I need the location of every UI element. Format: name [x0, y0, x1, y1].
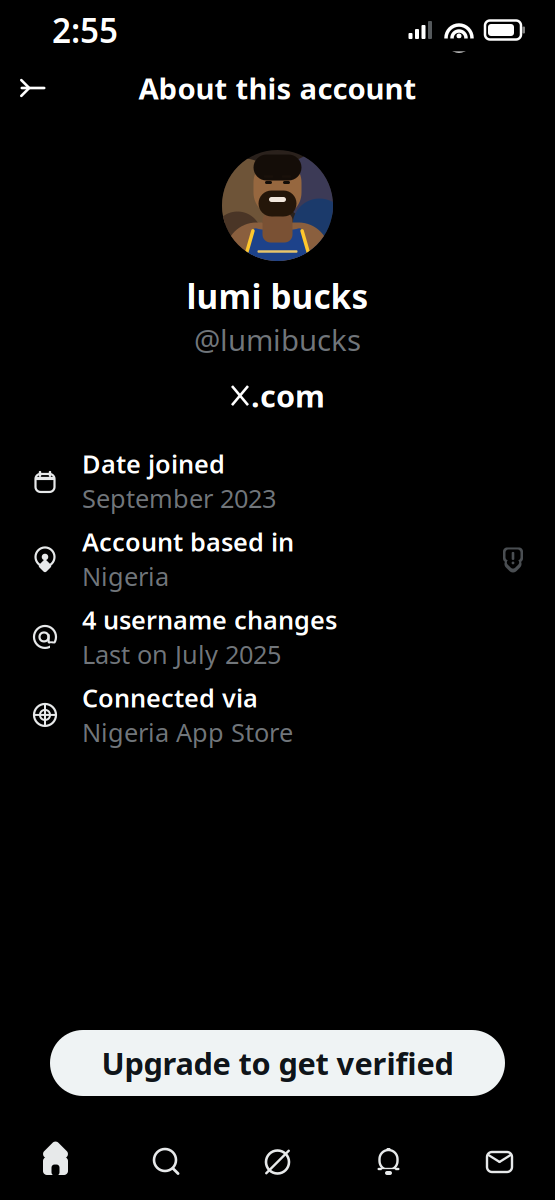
staticText: Date joined	[82, 447, 225, 480]
button[interactable]: About account location	[491, 537, 535, 581]
staticText: About this account	[138, 68, 416, 107]
staticText: Connected via	[82, 681, 258, 714]
staticText: 4 username changes	[82, 603, 337, 636]
staticText: Nigeria App Store	[82, 715, 293, 749]
button[interactable]: Grok	[222, 1124, 333, 1200]
button[interactable]: Home	[0, 1124, 111, 1200]
staticText: 2:55	[52, 8, 118, 52]
staticText: .com	[251, 375, 325, 416]
staticText: Nigeria	[82, 559, 169, 593]
button[interactable]: Messages	[444, 1124, 555, 1200]
button[interactable]: Notifications	[333, 1124, 444, 1200]
staticText: lumi bucks	[186, 274, 368, 318]
button[interactable]: Search	[111, 1124, 222, 1200]
staticText: Last on July 2025	[82, 637, 281, 671]
staticText: 30	[277, 260, 297, 283]
staticText: Account based in	[82, 525, 294, 558]
button[interactable]: Back	[10, 65, 56, 111]
button[interactable]: Upgrade to get verified	[50, 1030, 505, 1096]
staticText: Upgrade to get verified	[101, 1043, 453, 1083]
staticText: September 2023	[82, 481, 276, 515]
staticText: @lumibucks	[194, 320, 361, 359]
